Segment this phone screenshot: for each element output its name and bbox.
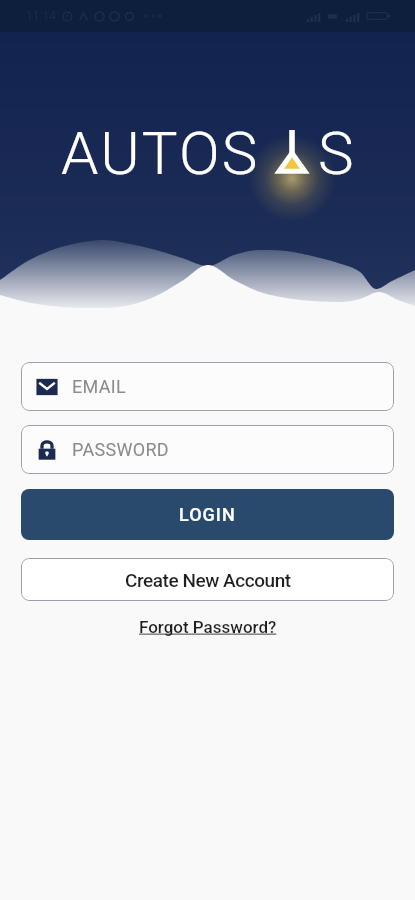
- staticText: Create New Account: [125, 569, 291, 591]
- staticText: 11:14: [26, 9, 56, 23]
- button[interactable]: Password: [21, 425, 394, 474]
- button[interactable]: Create New Account: [21, 558, 394, 601]
- staticText: LOGIN: [179, 504, 236, 525]
- button[interactable]: Email: [21, 362, 394, 411]
- other: Email: [36, 376, 58, 398]
- staticText: AUTOS: [61, 118, 260, 188]
- button[interactable]: Forgot Password?: [131, 614, 285, 640]
- staticText: S: [318, 118, 354, 188]
- staticText: EMAIL: [72, 376, 126, 397]
- button[interactable]: LOGIN: [21, 489, 394, 540]
- other: Password: [36, 439, 58, 461]
- staticText: PASSWORD: [72, 439, 169, 460]
